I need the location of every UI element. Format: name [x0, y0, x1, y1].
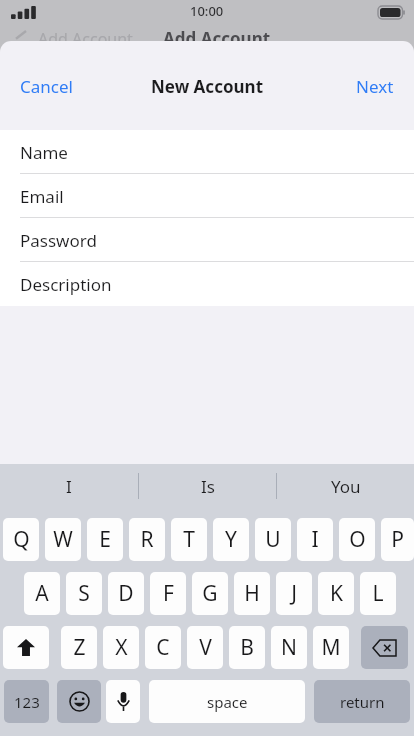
- button[interactable]: K: [318, 572, 354, 615]
- staticText: W: [53, 525, 73, 554]
- staticText: Y: [225, 525, 237, 554]
- staticText: K: [330, 579, 343, 608]
- staticText: E: [99, 525, 111, 554]
- button[interactable]: O: [339, 518, 375, 561]
- button[interactable]: You: [277, 464, 414, 508]
- button[interactable]: return: [314, 680, 410, 723]
- staticText: 10:00: [190, 2, 224, 20]
- button[interactable]: X: [103, 626, 139, 669]
- button[interactable]: Z: [61, 626, 97, 669]
- staticText: Cancel: [20, 75, 73, 98]
- staticText: G: [202, 579, 218, 608]
- button[interactable]: S: [66, 572, 102, 615]
- staticText: C: [156, 633, 170, 662]
- button[interactable]: Emoji: [57, 680, 101, 723]
- staticText: You: [331, 475, 361, 498]
- button[interactable]: U: [255, 518, 291, 561]
- button[interactable]: space: [149, 680, 305, 723]
- button[interactable]: G: [192, 572, 228, 615]
- button[interactable]: L: [360, 572, 396, 615]
- button[interactable]: P: [381, 518, 414, 561]
- button[interactable]: Email: [0, 174, 414, 218]
- staticText: Add Account: [163, 27, 271, 49]
- button[interactable]: Password: [0, 218, 414, 262]
- button[interactable]: Is: [139, 464, 276, 508]
- staticText: Add Account: [38, 28, 133, 50]
- staticText: T: [183, 525, 195, 554]
- staticText: Q: [13, 525, 30, 554]
- staticText: Description: [20, 273, 112, 296]
- button[interactable]: I: [0, 464, 138, 508]
- button[interactable]: E: [87, 518, 123, 561]
- button[interactable]: V: [187, 626, 223, 669]
- button[interactable]: Backspace: [361, 626, 408, 669]
- button[interactable]: Dictation: [106, 680, 140, 723]
- button[interactable]: N: [271, 626, 307, 669]
- button[interactable]: Q: [3, 518, 39, 561]
- button[interactable]: R: [129, 518, 165, 561]
- staticText: D: [118, 579, 134, 608]
- button[interactable]: 123: [4, 680, 49, 723]
- staticText: S: [78, 579, 90, 608]
- staticText: F: [163, 579, 174, 608]
- staticText: O: [349, 525, 366, 554]
- staticText: New Account: [151, 75, 264, 98]
- staticText: H: [244, 579, 260, 608]
- staticText: R: [140, 525, 154, 554]
- staticText: M: [321, 633, 341, 662]
- button[interactable]: Shift: [3, 626, 49, 669]
- staticText: X: [115, 633, 128, 662]
- staticText: J: [291, 579, 297, 608]
- staticText: Name: [20, 141, 68, 164]
- staticText: 123: [14, 692, 40, 712]
- staticText: P: [391, 525, 404, 554]
- staticText: Password: [20, 229, 97, 252]
- staticText: space: [207, 692, 248, 712]
- staticText: A: [35, 579, 49, 608]
- button[interactable]: Cancel: [0, 67, 93, 106]
- button[interactable]: M: [313, 626, 349, 669]
- staticText: B: [240, 633, 254, 662]
- staticText: return: [340, 692, 385, 712]
- button[interactable]: Y: [213, 518, 249, 561]
- staticText: L: [372, 579, 384, 608]
- staticText: I: [66, 475, 72, 498]
- button[interactable]: Next: [336, 67, 414, 106]
- staticText: I: [311, 525, 319, 554]
- staticText: Email: [20, 185, 64, 208]
- button[interactable]: F: [150, 572, 186, 615]
- staticText: V: [199, 633, 212, 662]
- button[interactable]: H: [234, 572, 270, 615]
- staticText: Next: [356, 75, 394, 98]
- button[interactable]: W: [45, 518, 81, 561]
- staticText: U: [265, 525, 281, 554]
- button[interactable]: A: [24, 572, 60, 615]
- button[interactable]: D: [108, 572, 144, 615]
- button[interactable]: J: [276, 572, 312, 615]
- button[interactable]: I: [297, 518, 333, 561]
- button[interactable]: Name: [0, 130, 414, 174]
- staticText: Is: [201, 475, 215, 498]
- button[interactable]: T: [171, 518, 207, 561]
- button[interactable]: C: [145, 626, 181, 669]
- staticText: Z: [73, 633, 86, 662]
- button[interactable]: Description: [0, 262, 414, 306]
- button[interactable]: B: [229, 626, 265, 669]
- staticText: N: [281, 633, 297, 662]
